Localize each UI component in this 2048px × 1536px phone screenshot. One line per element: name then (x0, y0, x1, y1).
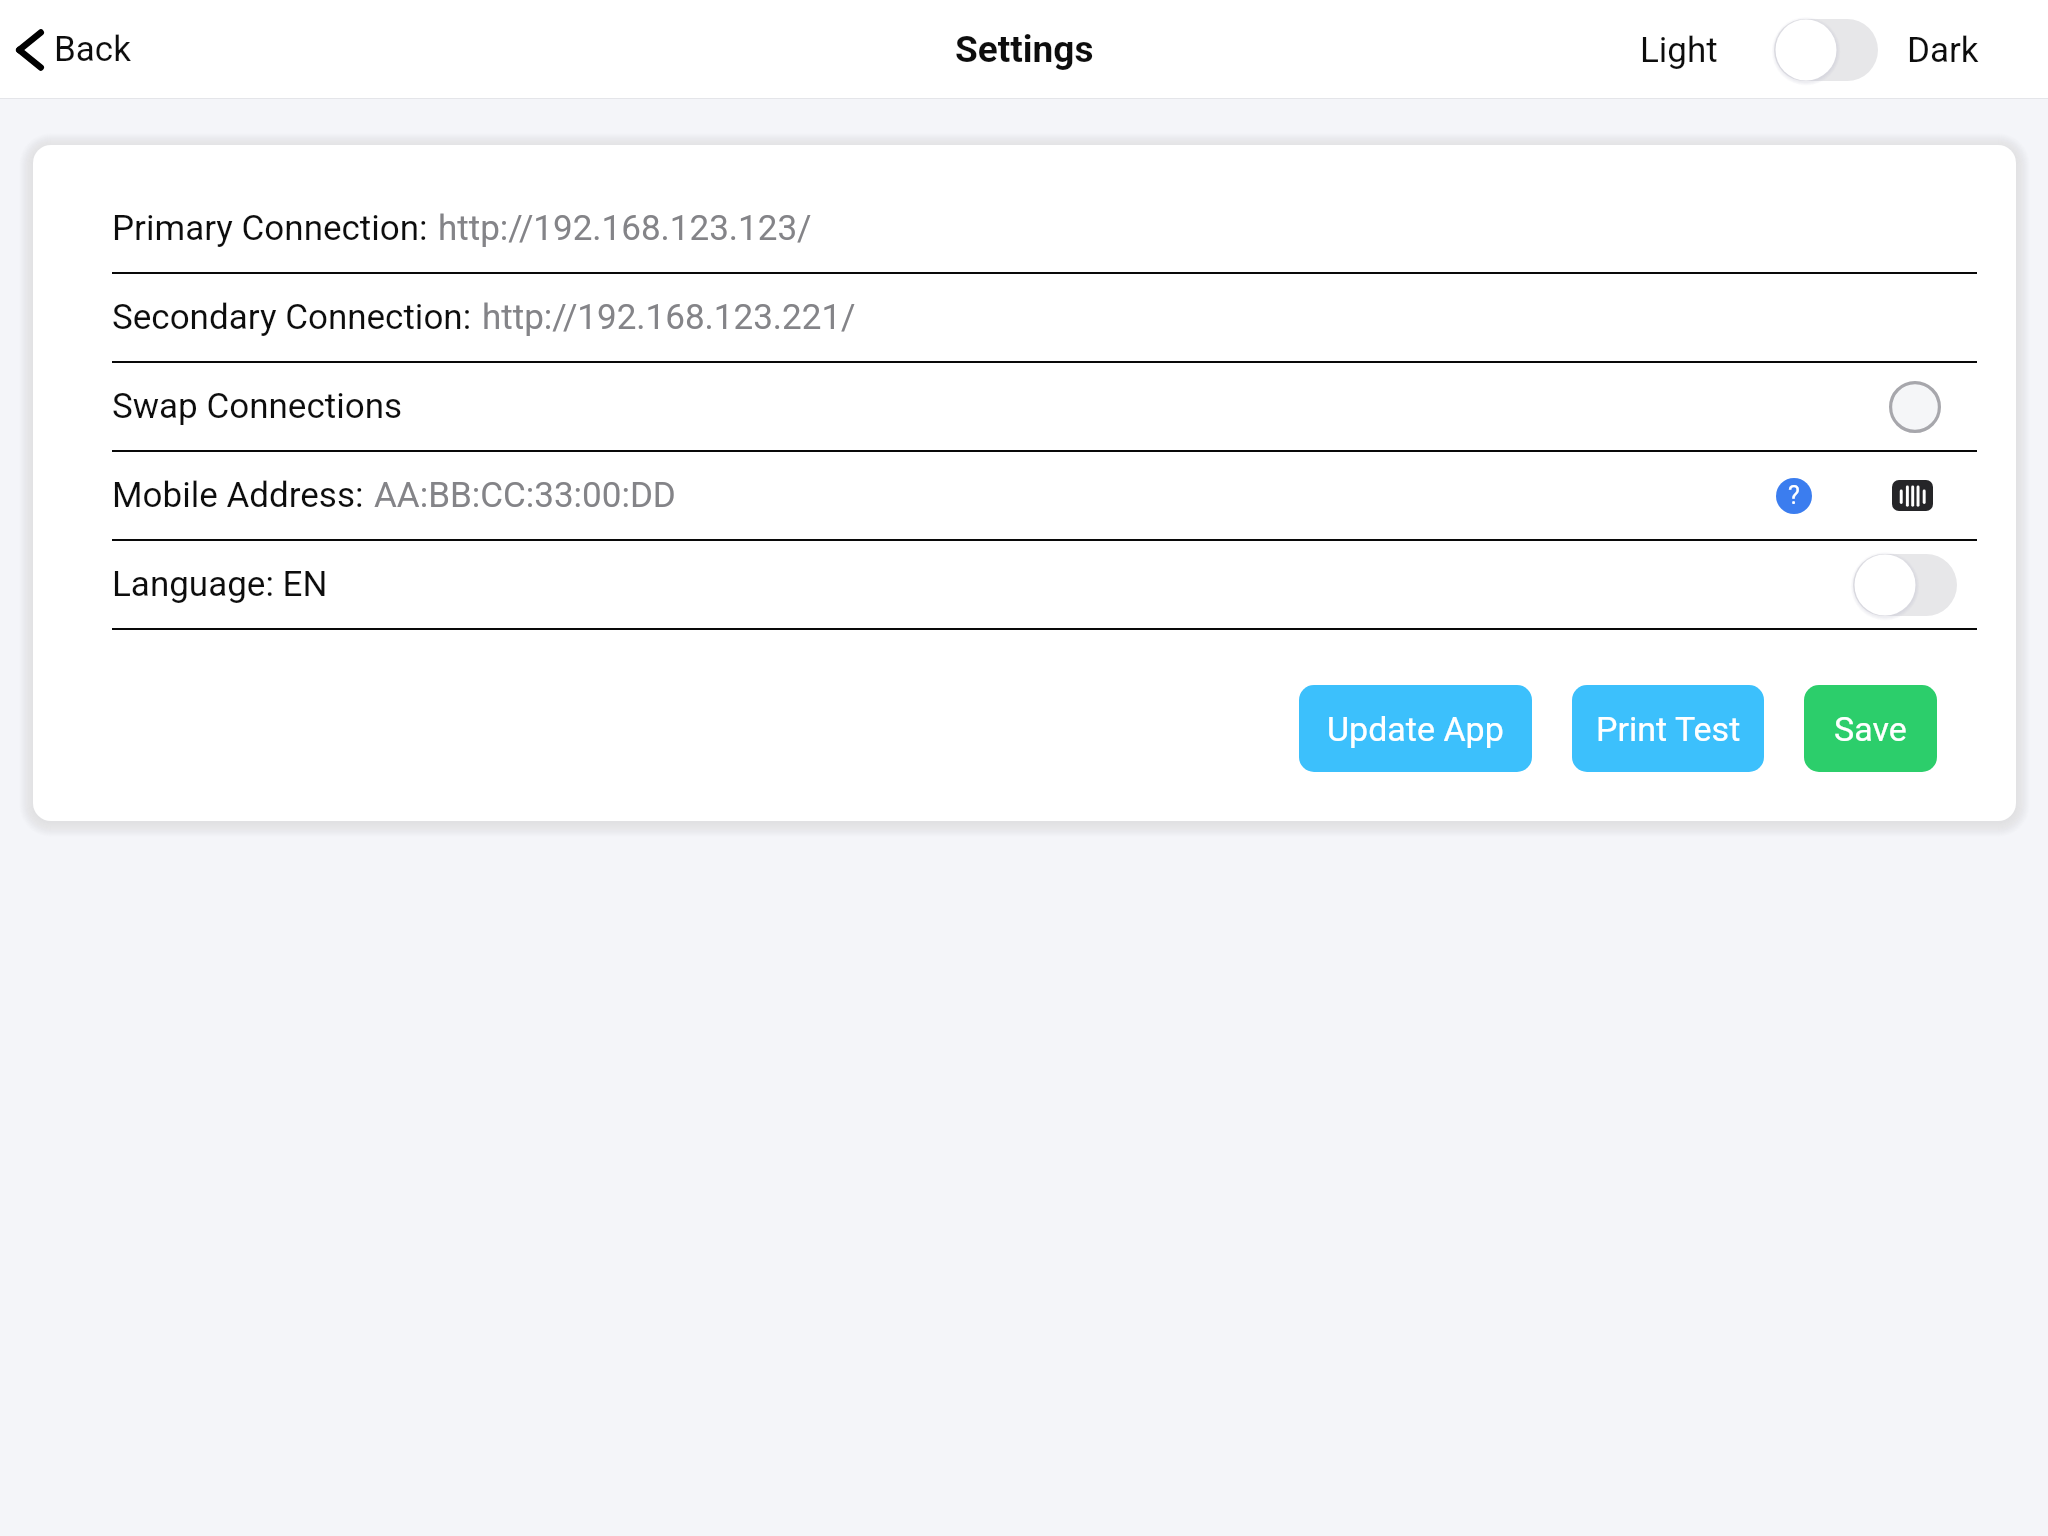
staticText: Dark (1907, 30, 1979, 71)
staticText: ? (1788, 481, 1800, 510)
staticText: http://192.168.123.123/ (438, 208, 812, 249)
staticText: http://192.168.123.221/ (482, 297, 856, 338)
staticText: Swap Connections (112, 386, 403, 427)
staticText: Language: EN (112, 564, 328, 605)
button[interactable]: Print Test (1572, 685, 1764, 772)
button[interactable]: Back (16, 0, 131, 99)
button[interactable]: Switch between light and dark theme (1774, 18, 1878, 82)
button[interactable]: Help (1776, 478, 1812, 514)
button[interactable]: Swap Connections toggle (1889, 381, 1941, 433)
staticText: Mobile Address: (112, 475, 364, 516)
button[interactable]: Scan barcode (1892, 480, 1933, 511)
staticText: Update App (1327, 709, 1504, 749)
staticText: Primary Connection: (112, 208, 428, 249)
button[interactable]: Secondary Connection: (33, 274, 2016, 361)
button[interactable]: Mobile Address: (33, 452, 2016, 539)
button[interactable]: Save (1804, 685, 1937, 772)
staticText: Settings (955, 28, 1094, 71)
staticText: Print Test (1596, 709, 1741, 749)
staticText: Secondary Connection: (112, 297, 472, 338)
button[interactable]: Update App (1299, 685, 1532, 772)
button[interactable]: Language: EN (33, 541, 2016, 628)
button[interactable]: Swap Connections (33, 363, 2016, 450)
staticText: AA:BB:CC:33:00:DD (374, 475, 676, 516)
button[interactable]: Primary Connection: (33, 185, 2016, 272)
staticText: Light (1640, 30, 1718, 71)
button[interactable]: Language toggle (1853, 553, 1957, 617)
staticText: Save (1834, 709, 1907, 749)
staticText: Back (54, 29, 131, 70)
